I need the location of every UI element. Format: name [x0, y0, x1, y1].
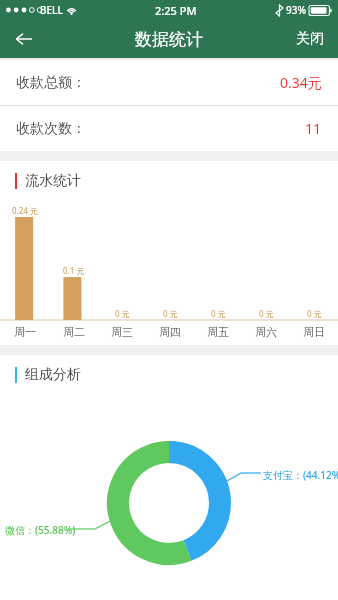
staticText: 数据统计 — [135, 29, 203, 50]
staticText: 0.1 元 — [63, 265, 85, 276]
staticText: 收款总额： — [16, 74, 86, 92]
staticText: BELL — [40, 3, 63, 17]
staticText: 周二 — [63, 325, 85, 339]
staticText: 0 元 — [307, 308, 322, 319]
button[interactable]: 收款次数： — [0, 106, 338, 151]
staticText: 0 元 — [115, 308, 130, 319]
staticText: 周五 — [207, 325, 229, 339]
staticText: 0 元 — [259, 308, 274, 319]
button[interactable]: 收款总额： — [0, 60, 338, 105]
staticText: 11 — [305, 119, 322, 138]
staticText: 周日 — [303, 325, 325, 339]
staticText: 周四 — [159, 325, 181, 339]
button[interactable]: 关闭 — [282, 20, 338, 58]
staticText: 周三 — [111, 325, 133, 339]
staticText: 周六 — [255, 325, 277, 339]
staticText: 组成分析 — [25, 366, 81, 384]
staticText: 0.24 元 — [12, 205, 38, 216]
staticText: 0 元 — [163, 308, 178, 319]
staticText: 93% — [286, 3, 306, 17]
staticText: 流水统计 — [25, 172, 81, 190]
staticText: 关闭 — [296, 30, 324, 48]
staticText: 支付宝：(44.12%) — [263, 468, 338, 482]
staticText: 2:25 PM — [155, 3, 197, 18]
staticText: 微信：(55.88%) — [5, 523, 76, 537]
staticText: 0 元 — [211, 308, 226, 319]
staticText: 收款次数： — [16, 120, 86, 138]
staticText: 周一 — [14, 325, 36, 339]
staticText: 0.34元 — [280, 73, 322, 92]
button[interactable]: Back — [0, 20, 48, 58]
